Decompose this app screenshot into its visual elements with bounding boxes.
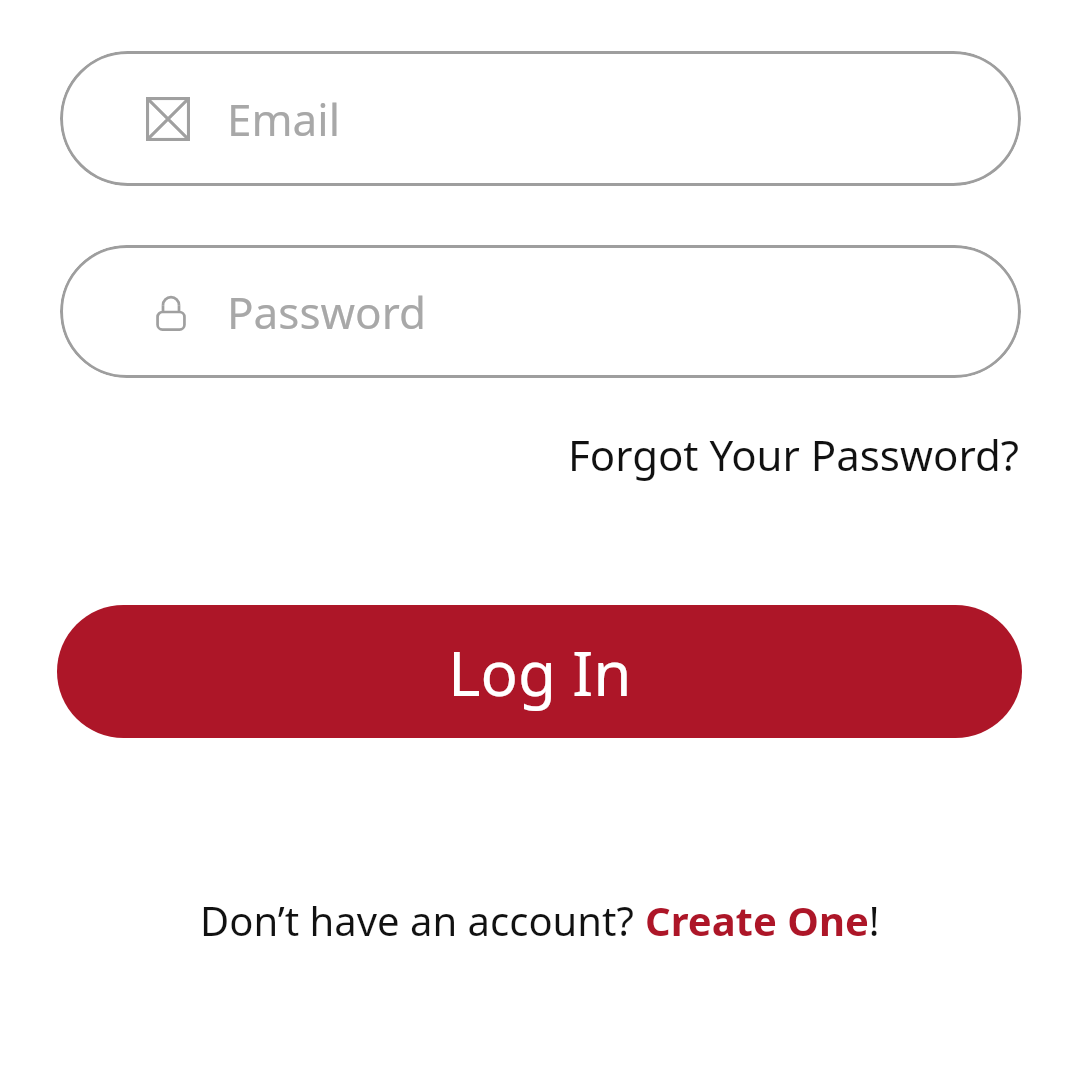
- staticText: Email: [227, 89, 340, 149]
- other: Email: [146, 97, 190, 141]
- staticText: Create One!: [645, 893, 880, 947]
- button[interactable]: Create One!: [645, 893, 880, 947]
- staticText: Don’t have an account?: [200, 893, 645, 947]
- button[interactable]: Password: [60, 245, 1021, 378]
- other: Password: [155, 292, 187, 332]
- staticText: Password: [227, 282, 427, 342]
- button[interactable]: Forgot Your Password?: [566, 424, 1021, 485]
- button[interactable]: Log In: [57, 605, 1022, 738]
- staticText: Forgot Your Password?: [568, 426, 1019, 483]
- button[interactable]: Email: [60, 51, 1021, 186]
- staticText: Log In: [448, 630, 632, 714]
